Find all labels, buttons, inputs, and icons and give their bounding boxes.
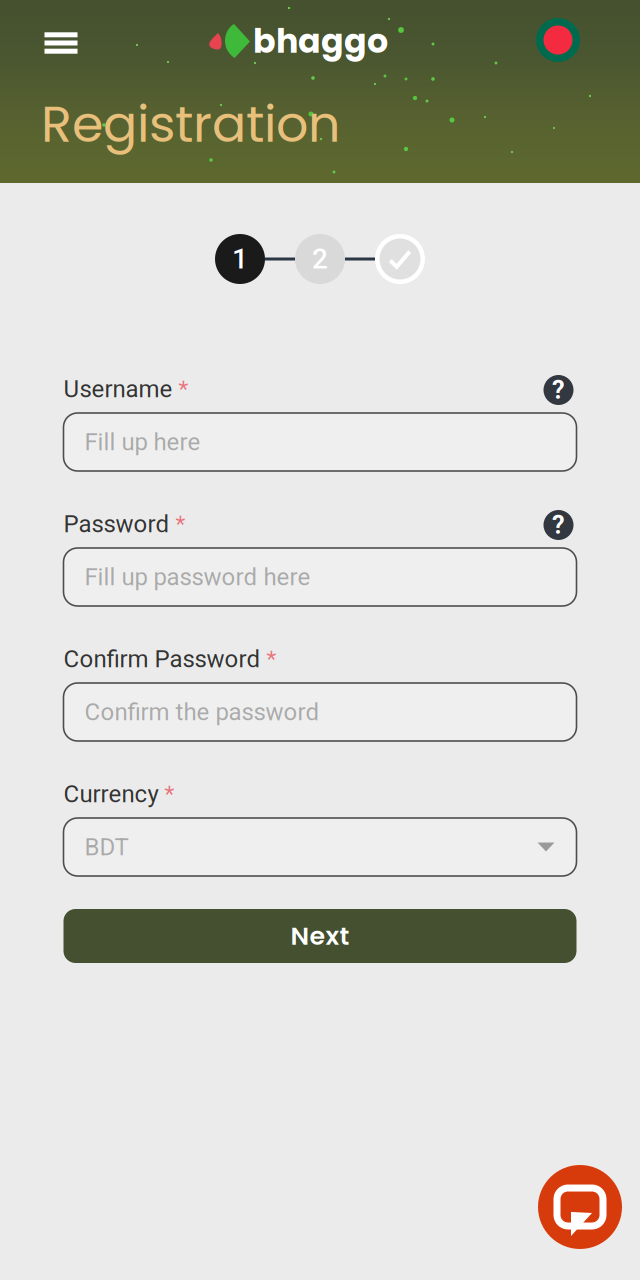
staticText: Password (63, 510, 169, 538)
staticText: 2 (312, 243, 328, 275)
staticText: Registration (41, 88, 340, 159)
staticText: * (260, 646, 276, 672)
button[interactable]: Next (63, 909, 576, 963)
staticText: * (158, 781, 174, 807)
button[interactable]: Live chat (538, 1165, 622, 1249)
button[interactable]: BDT (63, 818, 576, 876)
staticText: bhaggo (253, 18, 388, 64)
staticText: Fill up password here (84, 563, 310, 591)
staticText: ? (552, 375, 565, 405)
staticText: Next (290, 918, 349, 954)
staticText: Username (63, 375, 172, 403)
staticText: Fill up here (84, 428, 200, 456)
button[interactable]: Language (530, 12, 586, 68)
staticText: ? (552, 510, 565, 540)
button[interactable]: Confirm the password (63, 683, 576, 741)
button[interactable]: Help (543, 375, 573, 405)
staticText: Confirm Password (63, 645, 260, 673)
staticText: 1 (232, 243, 248, 275)
button[interactable]: Help (543, 510, 573, 540)
button[interactable]: Fill up here (63, 413, 576, 471)
staticText: BDT (84, 833, 128, 861)
button[interactable]: Menu (30, 15, 92, 71)
staticText: * (169, 511, 185, 537)
staticText: Confirm the password (84, 698, 319, 726)
button[interactable]: Fill up password here (63, 548, 576, 606)
staticText: * (172, 376, 188, 402)
staticText: Currency (63, 780, 158, 808)
